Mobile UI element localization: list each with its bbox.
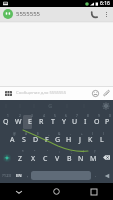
staticText: # bbox=[25, 132, 28, 136]
staticText: 8 bbox=[87, 114, 89, 118]
button[interactable]: Emoji bbox=[90, 88, 101, 99]
staticText: : bbox=[59, 150, 60, 154]
staticText: ; bbox=[71, 150, 72, 154]
staticText: ! bbox=[83, 150, 84, 154]
button[interactable]: # bbox=[18, 130, 30, 148]
staticText: L bbox=[100, 135, 104, 145]
button[interactable]: * bbox=[14, 148, 27, 167]
staticText: 0 bbox=[109, 114, 111, 118]
staticText: ) bbox=[103, 132, 104, 136]
staticText: 4 bbox=[43, 114, 45, 118]
staticText: * bbox=[22, 150, 24, 154]
button[interactable]: ( bbox=[85, 130, 96, 148]
button[interactable]: ; bbox=[63, 148, 75, 167]
staticText: K bbox=[88, 135, 93, 145]
button[interactable]: 0 bbox=[102, 112, 113, 130]
staticText: R bbox=[39, 117, 44, 127]
staticText: Q bbox=[3, 117, 9, 127]
staticText: F bbox=[45, 135, 49, 145]
button[interactable]: , bbox=[24, 168, 31, 183]
button[interactable]: Space bbox=[31, 171, 91, 180]
button[interactable]: Recents bbox=[75, 183, 113, 200]
button[interactable]: _ bbox=[41, 130, 52, 148]
staticText: 5 bbox=[54, 114, 56, 118]
button[interactable]: " bbox=[27, 148, 39, 167]
button[interactable]: Contact avatar bbox=[3, 9, 13, 19]
staticText: _ bbox=[48, 132, 50, 136]
staticText: 6:16 bbox=[100, 0, 110, 7]
button[interactable]: More options bbox=[101, 9, 112, 20]
staticText: @ bbox=[13, 132, 16, 136]
staticText: " bbox=[34, 150, 36, 154]
staticText: 1 bbox=[7, 114, 9, 118]
button[interactable]: Send bbox=[100, 168, 113, 183]
staticText: 7 bbox=[76, 114, 78, 118]
staticText: S bbox=[22, 135, 26, 145]
button[interactable]: Call bbox=[87, 7, 101, 21]
button[interactable]: Symbols bbox=[0, 168, 14, 183]
staticText: G bbox=[55, 135, 61, 145]
staticText: B bbox=[67, 154, 72, 164]
staticText: X bbox=[31, 154, 36, 164]
button[interactable]: 8 bbox=[80, 112, 91, 130]
staticText: M bbox=[90, 154, 97, 164]
button[interactable]: Shift bbox=[0, 148, 14, 167]
button[interactable]: Google search bbox=[45, 101, 55, 111]
staticText: 3 bbox=[31, 114, 33, 118]
staticText: EN bbox=[16, 173, 22, 179]
button[interactable]: ! bbox=[75, 148, 87, 167]
staticText: E bbox=[28, 117, 32, 127]
staticText: , bbox=[27, 172, 29, 179]
button[interactable]: ' bbox=[39, 148, 51, 167]
button[interactable]: 7 bbox=[69, 112, 80, 130]
button[interactable]: + bbox=[74, 130, 85, 148]
staticText: 6 bbox=[65, 114, 67, 118]
button[interactable]: 4 bbox=[36, 112, 47, 130]
staticText: . bbox=[95, 172, 97, 179]
staticText: & bbox=[58, 132, 61, 136]
button[interactable]: Home bbox=[37, 183, 75, 200]
staticText: 9 bbox=[98, 114, 100, 118]
staticText: ( bbox=[92, 132, 93, 136]
staticText: 5555555 bbox=[16, 10, 41, 18]
staticText: N bbox=[78, 154, 84, 164]
button[interactable]: Backspace bbox=[99, 148, 113, 167]
staticText: W bbox=[15, 117, 22, 127]
button[interactable]: 6 bbox=[58, 112, 69, 130]
button[interactable]: 5 bbox=[47, 112, 58, 130]
button[interactable]: @ bbox=[6, 130, 18, 148]
button[interactable]: 9 bbox=[91, 112, 102, 130]
button[interactable]: $ bbox=[30, 130, 41, 148]
button[interactable]: ) bbox=[96, 130, 107, 148]
staticText: T bbox=[51, 117, 55, 127]
button[interactable]: - bbox=[63, 130, 74, 148]
staticText: J bbox=[79, 135, 81, 145]
button[interactable]: Settings bbox=[101, 101, 111, 111]
button[interactable]: Hide keyboard bbox=[0, 183, 37, 200]
staticText: A bbox=[10, 135, 15, 145]
staticText: G bbox=[48, 102, 53, 110]
staticText: ?123 bbox=[2, 173, 12, 179]
staticText: C bbox=[43, 154, 48, 164]
staticText: I bbox=[84, 117, 87, 127]
staticText: H bbox=[66, 135, 72, 145]
staticText: ? bbox=[94, 150, 96, 154]
button[interactable]: ? bbox=[87, 148, 99, 167]
staticText: ' bbox=[47, 150, 48, 154]
button[interactable]: : bbox=[51, 148, 63, 167]
staticText: Сообщение для 5555555 bbox=[16, 90, 67, 96]
button[interactable]: 2 bbox=[12, 112, 24, 130]
staticText: - bbox=[70, 132, 72, 136]
button[interactable]: 3 bbox=[24, 112, 36, 130]
staticText: 2 bbox=[19, 114, 21, 118]
staticText: $ bbox=[37, 132, 39, 136]
button[interactable]: & bbox=[52, 130, 63, 148]
button[interactable]: Attach bbox=[101, 88, 112, 99]
staticText: + bbox=[81, 132, 83, 136]
staticText: Y bbox=[62, 117, 66, 127]
staticText: D bbox=[33, 135, 39, 145]
button[interactable]: EN bbox=[14, 168, 24, 183]
staticText: O bbox=[94, 117, 100, 127]
button[interactable]: 1 bbox=[0, 112, 12, 130]
